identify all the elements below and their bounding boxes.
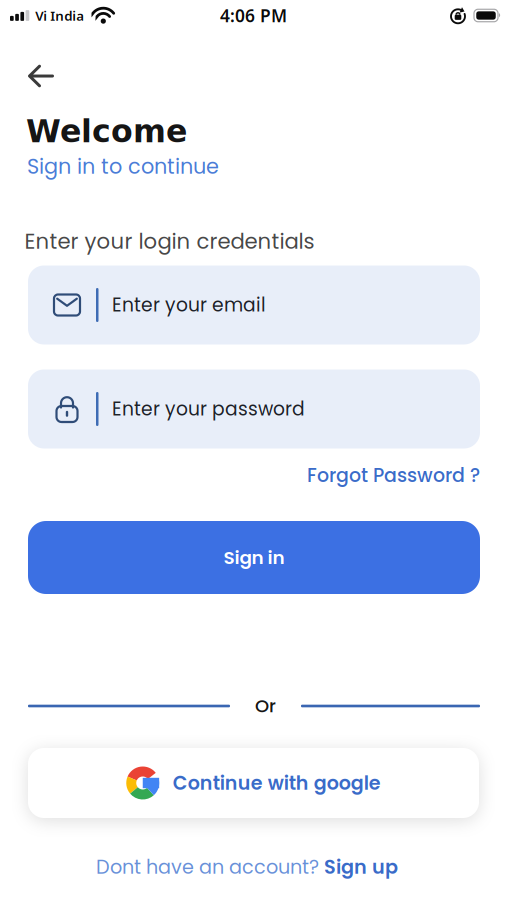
- staticText: Sign in to continue: [27, 152, 219, 181]
- staticText: Welcome: [26, 113, 187, 150]
- staticText: Sign up: [324, 853, 398, 880]
- button[interactable]: Continue with google: [28, 748, 479, 818]
- staticText: 4:06 PM: [220, 4, 287, 27]
- staticText: Continue with google: [173, 770, 381, 796]
- staticText: Forgot Password ?: [307, 462, 480, 488]
- staticText: Enter your password: [112, 396, 305, 422]
- staticText: Dont have an account?: [96, 853, 324, 880]
- staticText: Enter your email: [112, 292, 266, 318]
- button[interactable]: Forgot Password ?: [307, 462, 480, 488]
- button[interactable]: Enter your password: [28, 369, 480, 448]
- button[interactable]: Sign up: [324, 853, 398, 880]
- staticText: Enter your login credentials: [24, 226, 314, 256]
- button[interactable]: Back: [28, 65, 54, 87]
- staticText: Vi India: [35, 7, 84, 24]
- button[interactable]: Enter your email: [28, 265, 480, 344]
- button[interactable]: Sign in: [28, 521, 480, 594]
- staticText: Or: [255, 693, 276, 719]
- staticText: Sign in: [223, 545, 284, 570]
